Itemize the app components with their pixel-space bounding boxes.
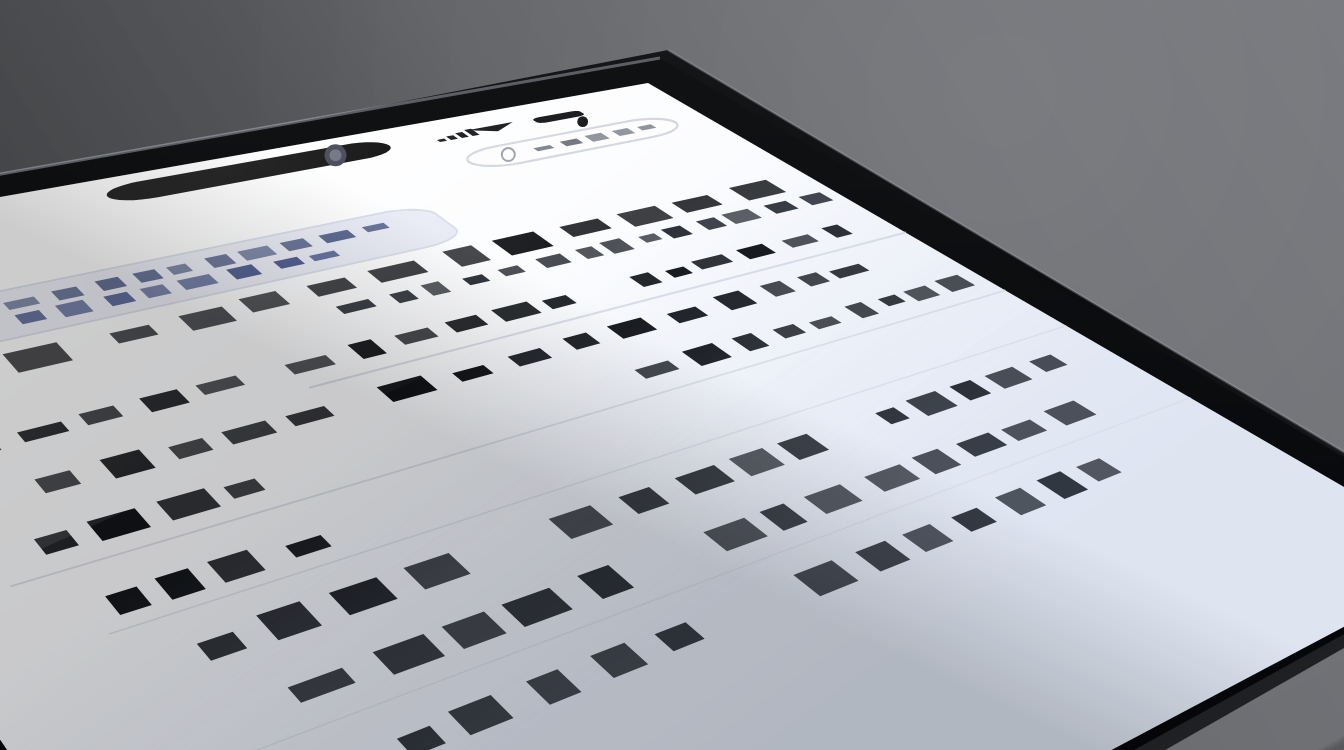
button[interactable]: Phone showing app list screen xyxy=(0,0,1344,750)
